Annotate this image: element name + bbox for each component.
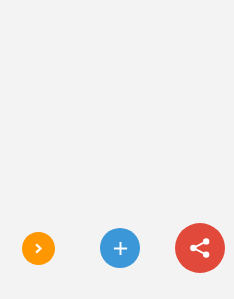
button[interactable]: Add (100, 228, 140, 268)
button[interactable]: Share (175, 223, 225, 273)
button[interactable]: Next (22, 232, 55, 265)
